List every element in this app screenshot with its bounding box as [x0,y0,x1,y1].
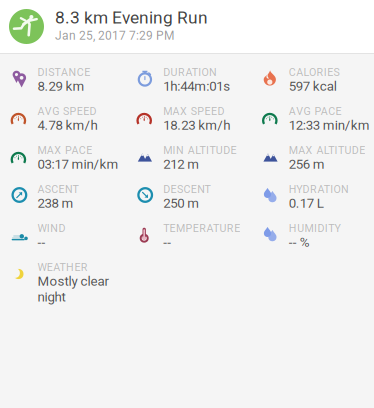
staticText: CALORIES [289,66,340,78]
staticText: DISTANCE [37,66,90,78]
staticText: 18.23 km/h [163,117,230,133]
staticText: 0.17 L [289,195,324,211]
staticText: MIN ALTITUDE [163,144,237,156]
staticText: 8.3 km Evening Run [55,7,208,28]
staticText: HUMIDITY [289,222,341,234]
staticText: 4.78 km/h [37,117,97,133]
button[interactable]: 8.3 km Evening Run [0,0,374,53]
staticText: -- % [289,234,310,250]
staticText: TEMPERATURE [163,222,240,234]
staticText: ASCENT [37,183,78,195]
staticText: AVG PACE [289,105,342,117]
staticText: -- [163,234,171,250]
staticText: 03:17 min/km [37,156,118,172]
staticText: 12:33 min/km [289,117,370,133]
staticText: MAX PACE [37,144,92,156]
staticText: MAX SPEED [163,105,224,117]
staticText: 1h:44m:01s [163,78,230,94]
staticText: DESCENT [163,183,211,195]
staticText: MAX ALTITUDE [289,144,365,156]
staticText: DURATION [163,66,217,78]
staticText: Mostly clear [37,273,109,289]
staticText: night [37,289,65,305]
staticText: Jan 25, 2017 7:29 PM [55,29,174,43]
staticText: 250 m [163,195,199,211]
staticText: -- [37,234,45,250]
staticText: WEATHER [37,261,88,273]
staticText: 597 kcal [289,78,337,94]
staticText: 256 m [289,156,325,172]
staticText: HYDRATION [289,183,349,195]
staticText: WIND [37,222,66,234]
staticText: AVG SPEED [37,105,97,117]
staticText: 8.29 km [37,78,84,94]
staticText: 238 m [37,195,73,211]
staticText: 212 m [163,156,199,172]
